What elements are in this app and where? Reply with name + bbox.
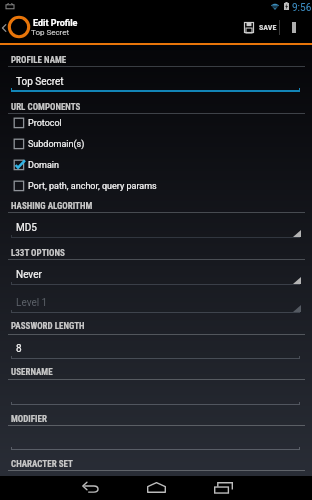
button[interactable]: [0, 67, 312, 91]
button[interactable]: Domain: [0, 154, 312, 175]
staticText: Protocol: [28, 118, 62, 129]
button[interactable]: [0, 335, 312, 358]
staticText: Port, path, anchor, query params: [28, 181, 157, 192]
staticText: MODIFIER: [11, 414, 47, 425]
staticText: SAVE: [259, 23, 277, 32]
staticText: 9:56: [292, 2, 312, 14]
staticText: USERNAME: [11, 367, 53, 378]
staticText: CHARACTER SET: [11, 459, 73, 470]
staticText: Never: [16, 269, 42, 281]
staticText: Domain: [28, 160, 59, 171]
staticText: HASHING ALGORITHM: [11, 201, 93, 212]
button[interactable]: [0, 285, 312, 311]
staticText: Top Secret: [31, 28, 70, 37]
button[interactable]: Protocol: [0, 112, 312, 133]
button[interactable]: [0, 260, 312, 284]
staticText: 8: [16, 343, 22, 355]
button[interactable]: More options: [286, 17, 302, 38]
button[interactable]: Back: [60, 476, 120, 500]
staticText: Subdomain(s): [28, 139, 85, 150]
staticText: Edit Profile: [33, 18, 78, 29]
button[interactable]: [0, 213, 312, 236]
staticText: PROFILE NAME: [11, 55, 67, 66]
staticText: L33T OPTIONS: [11, 248, 65, 259]
staticText: PASSWORD LENGTH: [11, 321, 85, 332]
button[interactable]: Recent apps: [193, 476, 253, 500]
staticText: MD5: [16, 222, 37, 234]
staticText: Level 1: [16, 297, 48, 309]
staticText: URL COMPONENTS: [11, 102, 81, 113]
button[interactable]: Navigate up: [0, 22, 8, 34]
button[interactable]: Port, path, anchor, query params: [0, 175, 312, 196]
staticText: Top Secret: [16, 76, 64, 88]
button[interactable]: SAVE: [244, 19, 277, 35]
button[interactable]: Subdomain(s): [0, 133, 312, 154]
button[interactable]: Home: [126, 476, 186, 500]
